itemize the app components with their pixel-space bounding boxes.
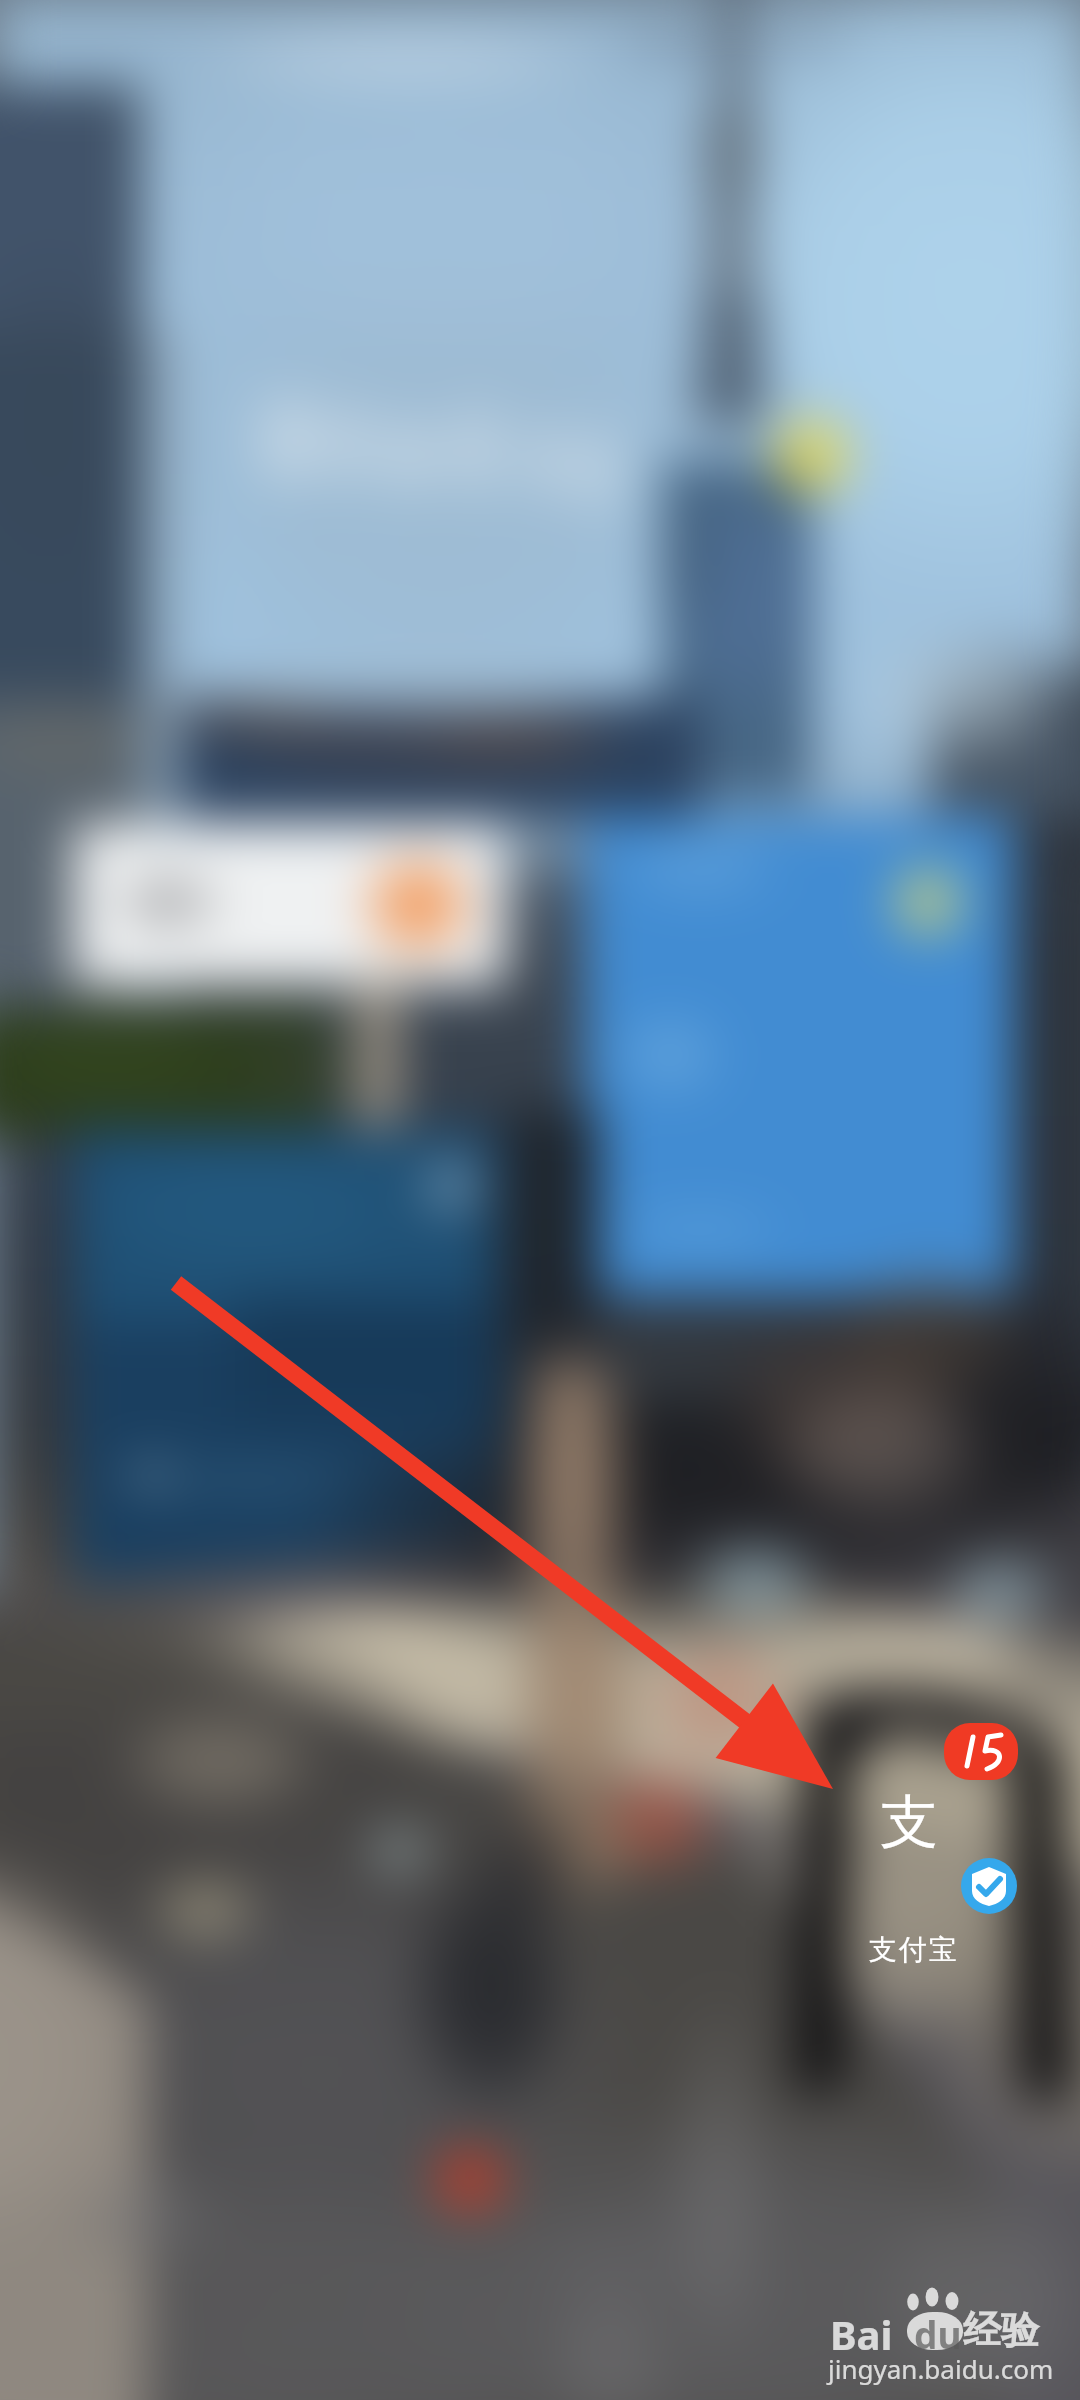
staticText: 支 bbox=[880, 1786, 938, 1859]
staticText: 支付宝 bbox=[868, 1932, 958, 1967]
staticText: 经验 bbox=[963, 2306, 1039, 2354]
staticText: du bbox=[914, 2309, 962, 2359]
staticText: jingyan.baidu.com bbox=[828, 2351, 1054, 2386]
button[interactable]: Verified app bbox=[961, 1858, 1017, 1914]
button[interactable]: Open Alipay, 15 notifications bbox=[860, 1716, 1030, 1966]
button[interactable]: jingyan.baidu.com bbox=[828, 2351, 1054, 2386]
button[interactable]: 支付宝 bbox=[868, 1932, 958, 1967]
staticText: Bai bbox=[830, 2307, 893, 2361]
button[interactable]: 15 unread notifications bbox=[944, 1723, 1018, 1780]
